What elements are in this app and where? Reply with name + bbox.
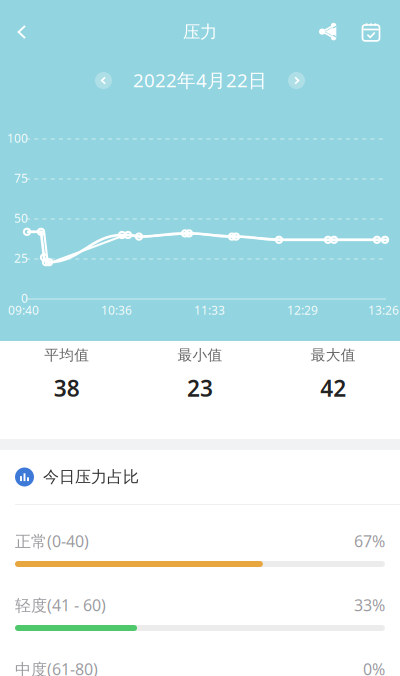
staticText: 12:29 <box>287 302 318 318</box>
button[interactable]: Calendar <box>351 10 391 54</box>
staticText: 平均值 <box>44 346 89 364</box>
staticText: 2022年4月22日 <box>133 68 267 92</box>
staticText: 50 <box>14 210 28 226</box>
button[interactable]: Next day <box>288 72 305 89</box>
staticText: 38 <box>54 373 80 403</box>
staticText: 今日压力占比 <box>43 467 139 487</box>
button[interactable]: Back <box>0 10 44 54</box>
staticText: 42 <box>320 373 346 403</box>
staticText: 100 <box>7 130 28 146</box>
button[interactable]: Share <box>308 10 348 54</box>
staticText: 压力 <box>183 21 217 43</box>
staticText: 13:26 <box>368 302 399 318</box>
staticText: 10:36 <box>101 302 132 318</box>
button[interactable]: Previous day <box>95 72 112 89</box>
staticText: 67% <box>354 530 385 552</box>
staticText: 33% <box>354 594 385 616</box>
staticText: 0% <box>363 658 385 676</box>
staticText: 25 <box>14 250 28 266</box>
staticText: 23 <box>187 373 213 403</box>
staticText: 最小值 <box>177 346 222 364</box>
staticText: 75 <box>14 170 28 186</box>
staticText: 正常(0-40) <box>15 530 89 552</box>
staticText: 中度(61-80) <box>15 658 98 676</box>
staticText: 0 <box>21 290 28 306</box>
staticText: 轻度(41 - 60) <box>15 594 106 616</box>
staticText: 11:33 <box>194 302 225 318</box>
staticText: 09:40 <box>8 302 39 318</box>
staticText: 最大值 <box>311 346 356 364</box>
